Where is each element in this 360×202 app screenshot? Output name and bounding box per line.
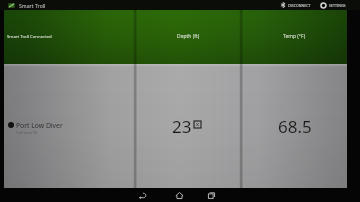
staticText: 68.5 xyxy=(278,115,312,138)
button[interactable]: Back xyxy=(133,188,151,202)
staticText: SETTINGS xyxy=(329,3,346,8)
staticText: Temp (°F) xyxy=(283,33,306,40)
staticText: Smart Troll xyxy=(19,2,46,9)
button[interactable]: Home xyxy=(170,188,188,202)
staticText: Port Low Diver xyxy=(16,121,63,130)
staticText: DISCONNECT xyxy=(288,3,311,8)
other: Bluetooth xyxy=(280,2,286,8)
button[interactable]: Recent apps xyxy=(202,188,220,202)
staticText: Smart Troll Connected xyxy=(7,33,52,39)
staticText: Depth (ft) xyxy=(177,33,200,40)
button[interactable]: Port Low Diver xyxy=(4,119,71,137)
button[interactable]: Settings xyxy=(318,0,348,10)
staticText: Troll Level 50 xyxy=(16,130,38,135)
other: Settings xyxy=(320,2,327,9)
staticText: 23 xyxy=(172,115,192,138)
button[interactable]: Bluetooth xyxy=(278,0,313,10)
